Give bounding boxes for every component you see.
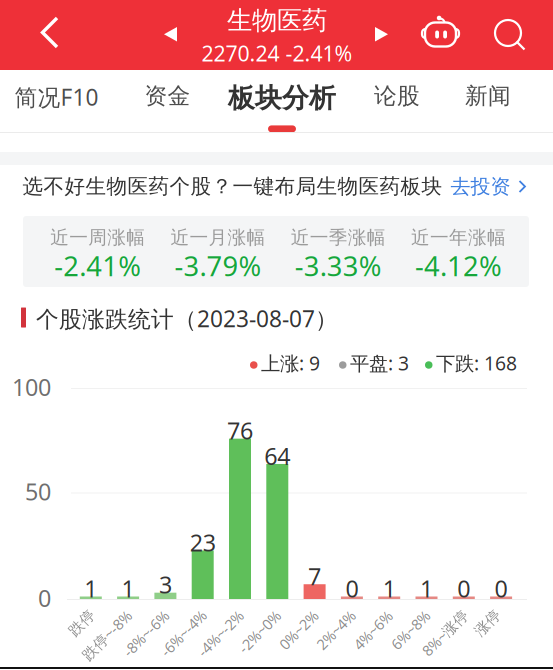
- staticText: 0%~2%: [275, 620, 323, 640]
- staticText: 3: [159, 569, 172, 600]
- staticText: 近一季涨幅: [291, 226, 386, 249]
- staticText: -3.33%: [295, 247, 382, 284]
- staticText: 0: [38, 582, 51, 614]
- staticText: 近一周涨幅: [50, 226, 145, 249]
- staticText: 0: [495, 572, 508, 604]
- staticText: 1: [420, 572, 433, 604]
- staticText: 去投资: [450, 174, 510, 199]
- staticText: 8%~涨停: [416, 623, 474, 643]
- staticText: -3.79%: [174, 247, 261, 284]
- staticText: 跌停~-8%: [75, 625, 138, 645]
- staticText: -4.12%: [415, 247, 502, 284]
- button[interactable]: Previous sector: [150, 0, 190, 70]
- staticText: 7: [308, 560, 321, 592]
- staticText: 1: [84, 572, 97, 604]
- button[interactable]: 选不好生物医药个股？一键布局生物医药板块: [0, 165, 553, 208]
- staticText: 76: [227, 415, 253, 446]
- staticText: 1: [122, 572, 135, 604]
- staticText: 上涨: 9: [261, 350, 320, 376]
- staticText: 6%~8%: [386, 620, 434, 640]
- staticText: 0: [457, 572, 470, 604]
- staticText: 平盘: 3: [350, 350, 409, 376]
- button[interactable]: Next sector: [361, 0, 401, 70]
- staticText: 简况F10: [14, 82, 98, 112]
- staticText: 100: [12, 371, 51, 403]
- staticText: 2%~4%: [312, 620, 360, 640]
- button[interactable]: 板块分析: [224, 70, 340, 132]
- staticText: -6%~-4%: [154, 623, 212, 643]
- button[interactable]: 新闻: [457, 70, 519, 132]
- button[interactable]: Back: [14, 0, 98, 70]
- staticText: 生物医药: [227, 5, 327, 36]
- staticText: 2270.24 -2.41%: [201, 39, 352, 67]
- button[interactable]: AI assistant: [406, 0, 474, 70]
- staticText: -4%~-2%: [191, 623, 249, 643]
- staticText: 50: [25, 475, 51, 507]
- button[interactable]: 简况F10: [6, 70, 106, 132]
- staticText: -8%~-6%: [117, 623, 175, 643]
- staticText: 选不好生物医药个股？一键布局生物医药板块: [22, 174, 442, 199]
- staticText: 近一年涨幅: [411, 226, 506, 249]
- staticText: 23: [190, 526, 216, 558]
- staticText: -2.41%: [54, 247, 141, 284]
- staticText: 0: [345, 572, 358, 604]
- staticText: 跌停: [67, 614, 97, 632]
- button[interactable]: 论股: [366, 70, 428, 132]
- staticText: 4%~6%: [349, 620, 397, 640]
- staticText: 板块分析: [228, 82, 336, 114]
- button[interactable]: 资金: [135, 70, 199, 132]
- staticText: 下跌: 168: [436, 350, 517, 376]
- staticText: 涨停: [473, 614, 503, 632]
- staticText: 资金: [144, 82, 190, 110]
- staticText: -2%~0%: [233, 622, 286, 642]
- staticText: 近一月涨幅: [170, 226, 265, 249]
- staticText: 64: [264, 440, 290, 472]
- staticText: 个股涨跌统计（2023-08-07）: [36, 303, 338, 334]
- staticText: 新闻: [465, 82, 511, 110]
- staticText: 1: [383, 572, 396, 604]
- button[interactable]: Search: [474, 0, 553, 70]
- staticText: 论股: [374, 82, 420, 110]
